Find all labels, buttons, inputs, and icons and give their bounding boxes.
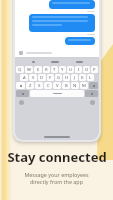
staticText: Q — [18, 67, 22, 73]
staticText: directly from the app — [30, 178, 83, 185]
staticText: N — [73, 83, 77, 89]
staticText: T — [53, 67, 56, 73]
button[interactable]: X — [35, 82, 43, 89]
button[interactable]: P — [91, 66, 98, 73]
button[interactable] — [76, 61, 83, 63]
button[interactable] — [49, 0, 95, 9]
button[interactable]: L — [87, 74, 94, 81]
button[interactable]: Return — [85, 90, 98, 97]
staticText: O — [85, 67, 89, 73]
button[interactable] — [29, 14, 95, 32]
staticText: Message your employees — [24, 171, 89, 178]
button[interactable]: V — [53, 82, 61, 89]
staticText: C — [47, 83, 50, 89]
button[interactable]: Attach — [15, 48, 99, 57]
staticText: Y — [61, 67, 64, 73]
other: Attach — [19, 51, 23, 55]
staticText: D — [40, 75, 44, 81]
staticText: X — [38, 83, 41, 89]
button[interactable]: C — [44, 82, 52, 89]
button[interactable]: H — [63, 74, 70, 81]
button[interactable]: N — [71, 82, 79, 89]
button[interactable]: R — [43, 66, 50, 73]
button[interactable]: G — [55, 74, 62, 81]
staticText: V — [56, 83, 59, 89]
staticText: E — [37, 67, 40, 73]
staticText: F — [49, 75, 52, 81]
button[interactable]: U — [67, 66, 74, 73]
button[interactable]: D — [38, 74, 46, 81]
staticText: K — [81, 75, 84, 81]
button[interactable]: Delete — [89, 82, 98, 89]
staticText: Stay connected — [7, 148, 107, 166]
button[interactable]: I — [75, 66, 82, 73]
button[interactable]: O — [83, 66, 90, 73]
staticText: U — [69, 67, 73, 73]
button[interactable] — [32, 61, 35, 63]
button[interactable]: Dictate — [90, 100, 95, 105]
staticText: W — [27, 67, 31, 73]
button[interactable]: Space — [30, 90, 84, 97]
staticText: I — [78, 67, 80, 73]
staticText: M — [82, 83, 86, 89]
staticText: H — [65, 75, 69, 81]
button[interactable]: M — [80, 82, 88, 89]
button[interactable]: W — [25, 66, 33, 73]
staticText: S — [32, 75, 35, 81]
staticText: B — [65, 83, 68, 89]
button[interactable]: F — [47, 74, 54, 81]
staticText: J — [74, 75, 76, 81]
button[interactable]: Shift — [16, 82, 25, 89]
button[interactable]: K — [79, 74, 86, 81]
button[interactable]: A — [20, 74, 28, 81]
button[interactable]: Numbers — [16, 90, 29, 97]
button[interactable]: Y — [59, 66, 66, 73]
button[interactable]: Q — [16, 66, 24, 73]
button[interactable] — [51, 61, 59, 63]
button[interactable] — [65, 37, 95, 45]
staticText: L — [89, 75, 92, 81]
button[interactable]: S — [29, 74, 37, 81]
staticText: P — [93, 67, 96, 73]
button[interactable]: Emoji — [19, 100, 24, 105]
staticText: A — [23, 75, 26, 81]
button[interactable]: E — [34, 66, 42, 73]
button[interactable]: Z — [26, 82, 34, 89]
staticText: Z — [29, 83, 32, 89]
staticText: G — [57, 75, 61, 81]
button[interactable]: T — [51, 66, 58, 73]
button[interactable]: B — [62, 82, 70, 89]
button[interactable]: J — [71, 74, 78, 81]
staticText: R — [45, 67, 48, 73]
